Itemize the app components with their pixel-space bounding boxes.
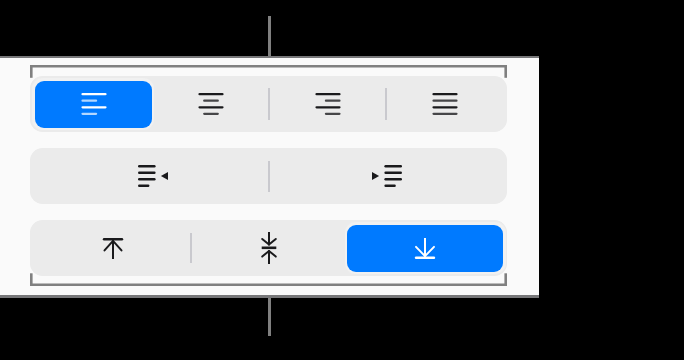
button[interactable]: Decrease indent	[35, 148, 270, 204]
button[interactable]: Justify	[386, 76, 503, 132]
button[interactable]: Align left	[35, 76, 152, 132]
button[interactable]: Align center	[152, 76, 269, 132]
button[interactable]: Align top	[35, 220, 191, 276]
button[interactable]: Increase indent	[269, 148, 504, 204]
button[interactable]: Align bottom	[347, 220, 503, 276]
button[interactable]: Align middle	[191, 220, 347, 276]
button[interactable]: Align right	[269, 76, 386, 132]
